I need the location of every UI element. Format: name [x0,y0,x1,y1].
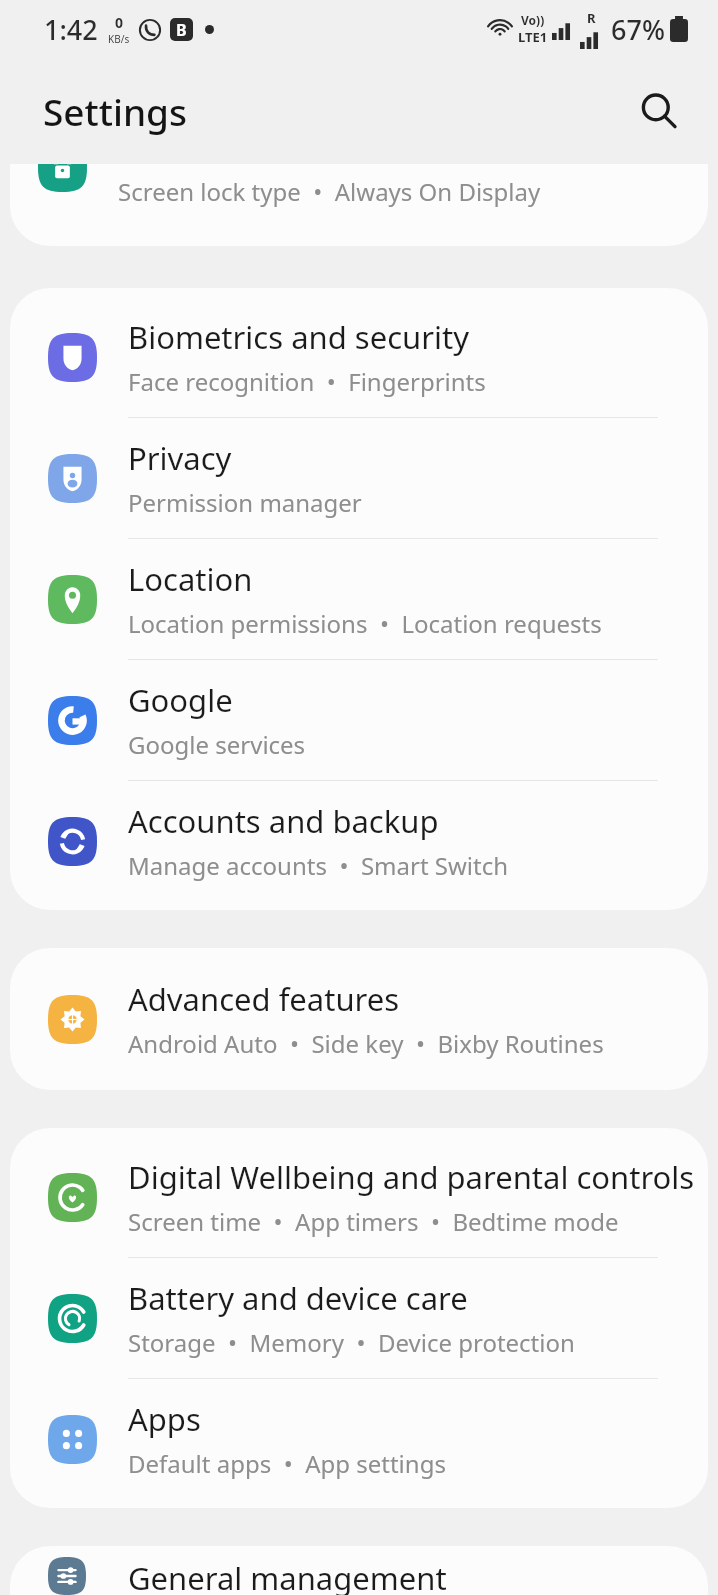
staticText: Settings [43,86,188,136]
button[interactable]: Lock screen [10,164,708,246]
staticText: Location [128,558,253,600]
staticText: 67% [611,11,665,48]
staticText: R [587,9,596,27]
staticText: Advanced features [128,978,400,1020]
button[interactable]: General management [10,1557,708,1595]
staticText: Apps [128,1398,201,1440]
staticText: Accounts and backup [128,800,439,842]
staticText: Location permissions • Location requests [128,607,602,640]
button[interactable]: Advanced features [10,959,708,1079]
staticText: Screen lock type • Always On Display [118,175,541,208]
staticText: Face recognition • Fingerprints [128,365,486,398]
button[interactable]: Privacy [10,418,708,538]
staticText: B [176,19,187,41]
button[interactable]: Location [10,539,708,659]
button[interactable]: Apps [10,1379,708,1499]
button[interactable]: Google [10,660,708,780]
staticText: Screen time • App timers • Bedtime mode [128,1205,619,1238]
staticText: 0 [115,13,124,32]
button[interactable]: Digital Wellbeing and parental controls [10,1137,708,1257]
staticText: Android Auto • Side key • Bixby Routines [128,1027,604,1060]
button[interactable]: Biometrics and security [10,297,708,417]
staticText: Vo)) [521,12,545,28]
staticText: Google [128,679,233,721]
staticText: KB/s [108,32,130,46]
staticText: 1:42 [44,11,98,48]
button[interactable]: Battery and device care [10,1258,708,1378]
staticText: Default apps • App settings [128,1447,446,1480]
staticText: Manage accounts • Smart Switch [128,849,509,882]
button[interactable]: Accounts and backup [10,781,708,901]
staticText: Google services [128,728,306,761]
button[interactable]: Search [626,78,692,144]
staticText: Permission manager [128,486,362,519]
staticText: Privacy [128,437,232,479]
staticText: Digital Wellbeing and parental controls [128,1156,695,1198]
staticText: Biometrics and security [128,316,469,358]
staticText: Battery and device care [128,1277,468,1319]
staticText: LTE1 [518,28,548,46]
staticText: Storage • Memory • Device protection [128,1326,575,1359]
staticText: General management [128,1557,447,1595]
